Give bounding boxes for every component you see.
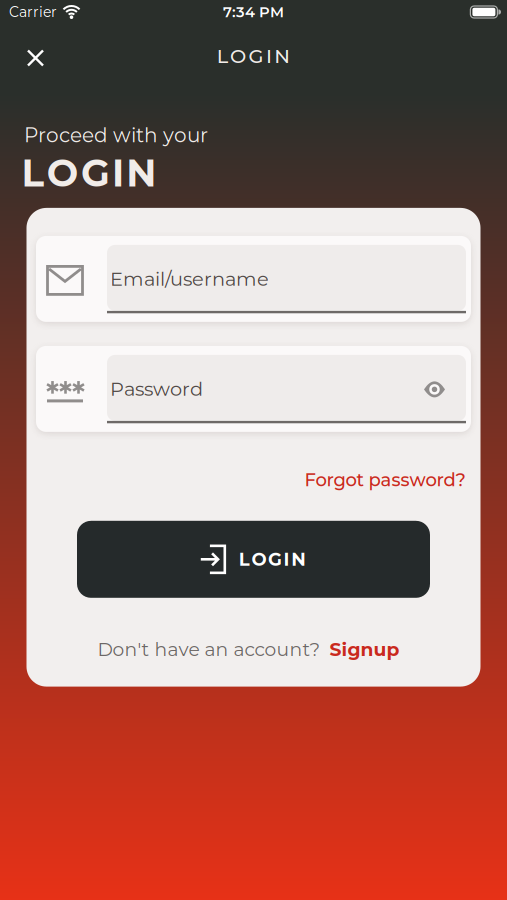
staticText: I (284, 548, 290, 570)
staticText: O (47, 150, 79, 196)
staticText: L (239, 548, 250, 570)
staticText: Don't have an account? (97, 638, 320, 661)
button[interactable]: Forgot password? (304, 469, 465, 491)
button[interactable]: L (77, 521, 430, 598)
staticText: N (291, 548, 306, 570)
button[interactable]: Close (18, 40, 53, 75)
staticText: Carrier (9, 3, 57, 21)
staticText: Forgot password? (304, 469, 465, 491)
staticText: O (251, 548, 266, 570)
staticText: O (230, 44, 246, 68)
staticText: I (112, 150, 124, 196)
staticText: G (81, 150, 110, 196)
staticText: L (217, 44, 228, 68)
staticText: G (268, 548, 282, 570)
staticText: N (274, 44, 290, 68)
staticText: Password (110, 377, 203, 401)
staticText: 7:34 PM (223, 3, 284, 21)
button[interactable]: Signup (329, 638, 399, 661)
staticText: G (248, 44, 263, 68)
staticText: L (21, 150, 44, 196)
staticText: N (126, 150, 156, 196)
staticText: Email/username (110, 267, 269, 291)
staticText: I (266, 44, 272, 68)
staticText: Signup (329, 638, 399, 661)
staticText: Proceed with your (24, 123, 208, 147)
